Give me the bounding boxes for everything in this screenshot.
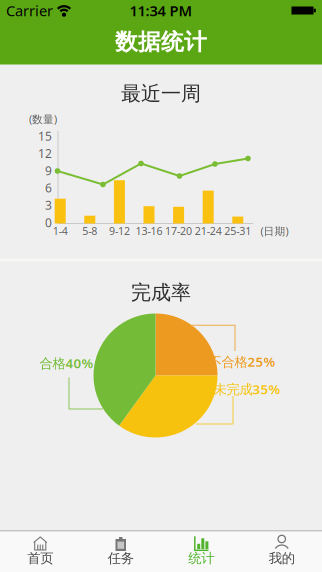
staticText: 13-16	[135, 224, 162, 238]
staticText: 12	[38, 145, 52, 161]
button[interactable]: 我的	[241, 531, 322, 572]
staticText: 9	[45, 163, 52, 178]
staticText: 首页	[27, 550, 53, 566]
staticText: 17-20	[165, 224, 192, 238]
staticText: 合格40%	[39, 354, 93, 372]
staticText: 5-8	[82, 224, 97, 238]
staticText: 0	[45, 214, 52, 230]
button[interactable]: 首页	[0, 531, 80, 572]
staticText: 完成率	[131, 280, 191, 305]
staticText: (数量)	[29, 112, 57, 126]
button[interactable]: 任务	[80, 531, 161, 572]
staticText: 数据统计	[115, 28, 207, 56]
staticText: 3	[45, 197, 52, 213]
staticText: 不合格25%	[208, 353, 275, 370]
staticText: 9-12	[109, 224, 130, 238]
staticText: 21-24	[195, 224, 222, 238]
staticText: 未完成35%	[213, 380, 280, 398]
staticText: 6	[45, 180, 52, 196]
button[interactable]: 统计	[161, 531, 241, 572]
staticText: 最近一周	[121, 81, 201, 106]
staticText: (日期)	[260, 224, 288, 238]
staticText: 11:34 PM	[129, 1, 192, 20]
staticText: 我的	[269, 550, 295, 566]
staticText: 统计	[188, 550, 214, 566]
staticText: 25-31	[224, 224, 251, 238]
staticText: Carrier	[6, 1, 53, 20]
staticText: 任务	[108, 550, 134, 566]
staticText: 1-4	[53, 224, 68, 238]
staticText: 15	[38, 128, 52, 144]
